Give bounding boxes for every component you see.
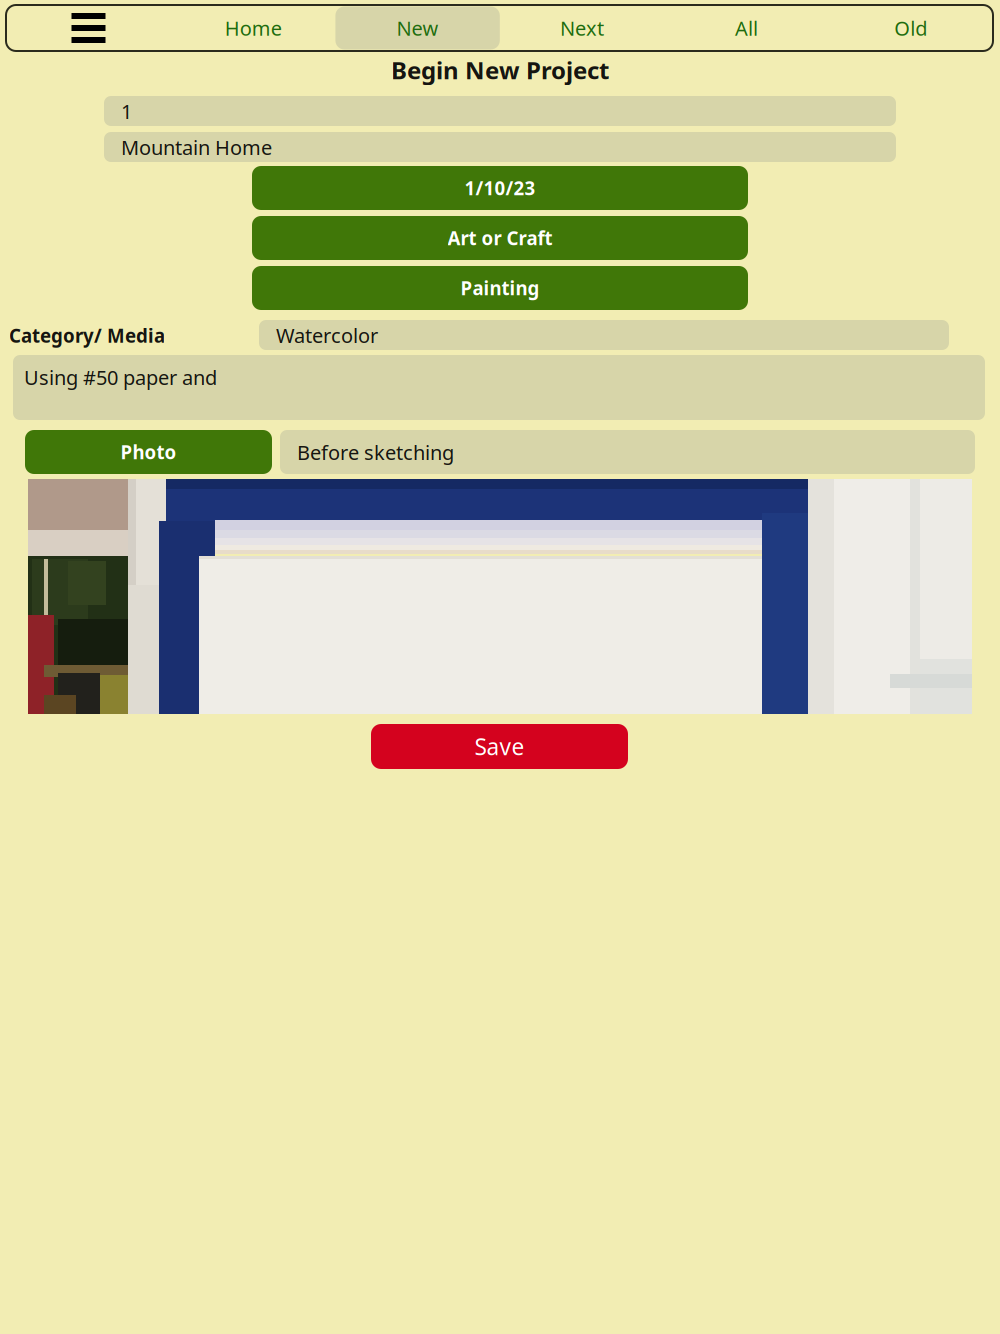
button[interactable]: Art or Craft bbox=[252, 216, 748, 260]
button[interactable]: Before sketching bbox=[280, 430, 975, 474]
staticText: 1 bbox=[121, 98, 132, 125]
button[interactable]: Next bbox=[500, 6, 664, 49]
staticText: Old bbox=[894, 15, 927, 41]
button[interactable]: Mountain Home bbox=[104, 132, 896, 162]
staticText: Painting bbox=[460, 276, 539, 300]
staticText: Watercolor bbox=[276, 322, 378, 349]
button[interactable]: 1/10/23 bbox=[252, 166, 748, 210]
staticText: Mountain Home bbox=[121, 134, 272, 161]
staticText: All bbox=[735, 15, 758, 41]
button[interactable]: Old bbox=[829, 6, 993, 49]
staticText: Photo bbox=[120, 440, 176, 464]
button[interactable]: 1 bbox=[104, 96, 896, 126]
staticText: Using #50 paper and bbox=[24, 364, 217, 391]
button[interactable]: New bbox=[335, 6, 500, 49]
staticText: Home bbox=[225, 15, 282, 41]
staticText: Category/ Media bbox=[9, 323, 165, 348]
button[interactable]: Using #50 paper and bbox=[13, 355, 985, 420]
staticText: Begin New Project bbox=[391, 54, 609, 86]
staticText: New bbox=[397, 15, 439, 41]
button[interactable]: Menu bbox=[6, 5, 171, 50]
button[interactable]: Watercolor bbox=[259, 320, 949, 350]
staticText: Save bbox=[474, 731, 524, 761]
staticText: 1/10/23 bbox=[464, 176, 535, 200]
staticText: Art or Craft bbox=[447, 226, 552, 250]
button[interactable]: Painting bbox=[252, 266, 748, 310]
staticText: Before sketching bbox=[297, 439, 454, 466]
staticText: Next bbox=[560, 15, 604, 41]
button[interactable]: Home bbox=[171, 6, 335, 49]
button[interactable]: All bbox=[664, 6, 829, 49]
button[interactable]: Save bbox=[371, 724, 628, 769]
button[interactable]: Photo bbox=[25, 430, 272, 474]
